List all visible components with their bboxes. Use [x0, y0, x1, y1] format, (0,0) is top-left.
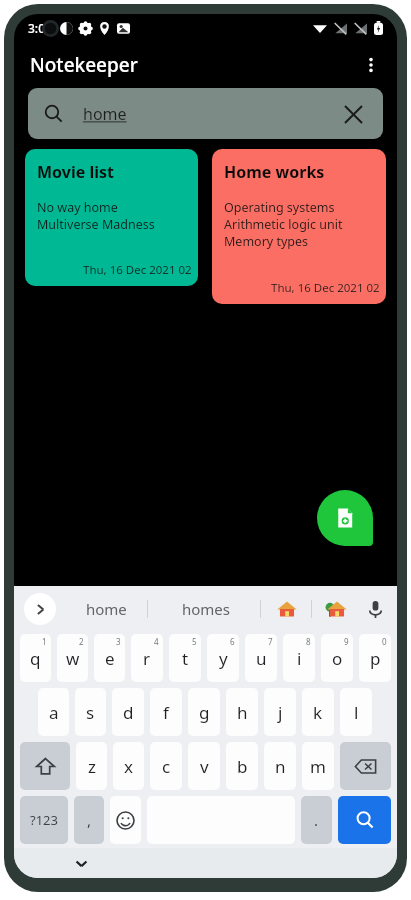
staticText: o [332, 647, 343, 670]
button[interactable]: h [226, 688, 258, 736]
button[interactable]: n [264, 742, 296, 790]
staticText: Arithmetic logic unit [224, 216, 343, 233]
button[interactable]: e [94, 634, 125, 682]
button[interactable]: r [131, 634, 163, 682]
staticText: Operating systems [224, 199, 335, 216]
staticText: 1 [42, 636, 47, 647]
staticText: r [143, 647, 151, 670]
staticText: n [275, 755, 286, 778]
button[interactable]: y [207, 634, 239, 682]
button[interactable]: Clear search [333, 94, 373, 134]
staticText: 6 [230, 636, 235, 647]
staticText: Home works [224, 161, 325, 183]
staticText: t [182, 647, 189, 670]
button[interactable]: q [20, 634, 51, 682]
button[interactable]: z [76, 742, 107, 790]
button[interactable]: f [150, 688, 182, 736]
button[interactable]: home [28, 88, 383, 139]
staticText: d [123, 701, 134, 724]
button[interactable]: l [340, 688, 372, 736]
staticText: , [87, 810, 92, 830]
button[interactable]: home [86, 599, 127, 619]
staticText: j [278, 701, 283, 724]
button[interactable]: k [302, 688, 334, 736]
staticText: i [297, 647, 302, 670]
button[interactable]: Symbols [20, 796, 68, 844]
button[interactable]: m [302, 742, 334, 790]
button[interactable]: u [245, 634, 277, 682]
button[interactable]: Voice input [359, 593, 391, 625]
button[interactable]: Emoji [110, 796, 141, 844]
button[interactable]: d [112, 688, 144, 736]
staticText: p [370, 647, 381, 670]
staticText: m [310, 755, 326, 778]
staticText: u [256, 647, 267, 670]
staticText: 4 [154, 636, 159, 647]
staticText: f [163, 701, 169, 724]
staticText: g [199, 701, 210, 724]
staticText: . [314, 810, 319, 830]
staticText: 2 [79, 636, 84, 647]
staticText: 5 [192, 636, 197, 647]
staticText: Thu, 16 Dec 2021 02 [83, 262, 192, 278]
staticText: home [83, 103, 127, 125]
button[interactable] [274, 596, 300, 622]
staticText: Notekeeper [30, 52, 138, 78]
staticText: e [105, 647, 115, 670]
button[interactable]: x [113, 742, 144, 790]
button[interactable]: t [169, 634, 201, 682]
staticText: Movie list [37, 161, 114, 183]
button[interactable]: g [188, 688, 220, 736]
button[interactable]: Expand suggestions [24, 593, 56, 625]
staticText: b [237, 755, 248, 778]
button[interactable]: w [57, 634, 88, 682]
button[interactable]: b [226, 742, 258, 790]
staticText: w [66, 647, 80, 670]
button[interactable]: v [188, 742, 220, 790]
button[interactable]: Comma [74, 796, 104, 844]
button[interactable]: a [38, 688, 69, 736]
staticText: v [200, 755, 209, 778]
staticText: 3 [116, 636, 121, 647]
staticText: q [30, 647, 41, 670]
button[interactable]: Shift [20, 742, 70, 790]
button[interactable]: o [321, 634, 353, 682]
button[interactable]: p [359, 634, 391, 682]
button[interactable]: New note [317, 490, 373, 546]
button[interactable]: c [150, 742, 182, 790]
staticText: 0 [382, 636, 387, 647]
staticText: x [124, 755, 133, 778]
button[interactable]: Backspace [340, 742, 391, 790]
staticText: 3:02 [28, 20, 52, 36]
button[interactable]: homes [182, 599, 231, 619]
staticText: 8 [306, 636, 311, 647]
button[interactable]: Movie list [25, 149, 198, 286]
button[interactable]: Hide keyboard [64, 848, 98, 878]
button[interactable]: s [75, 688, 106, 736]
staticText: 7 [268, 636, 273, 647]
staticText: y [219, 647, 228, 670]
staticText: h [237, 701, 248, 724]
button[interactable]: More options [351, 45, 391, 85]
staticText: k [313, 701, 323, 724]
staticText: No way home [37, 199, 118, 216]
button[interactable]: Home works [212, 149, 386, 304]
staticText: ?123 [30, 811, 58, 829]
staticText: l [354, 701, 359, 724]
staticText: Thu, 16 Dec 2021 02 [271, 280, 380, 296]
staticText: Multiverse Madness [37, 216, 155, 233]
button[interactable]: i [283, 634, 315, 682]
button[interactable]: j [264, 688, 296, 736]
staticText: c [162, 755, 171, 778]
staticText: 9 [344, 636, 349, 647]
button[interactable] [324, 596, 350, 622]
staticText: a [49, 701, 59, 724]
button[interactable]: Period [301, 796, 332, 844]
staticText: z [88, 755, 96, 778]
button[interactable]: Search [338, 796, 391, 844]
staticText: s [86, 701, 95, 724]
staticText: Memory types [224, 233, 309, 250]
